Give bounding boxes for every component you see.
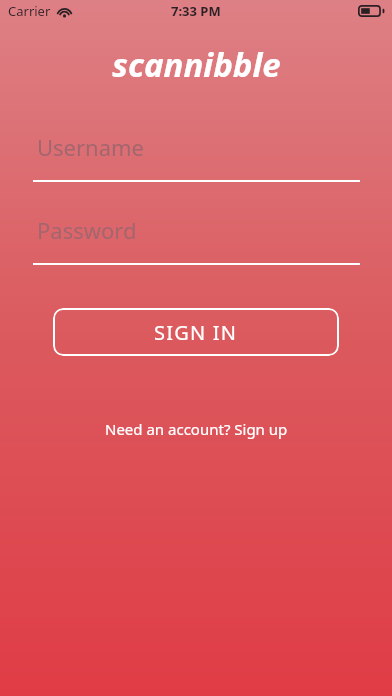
- button[interactable]: Username: [33, 130, 360, 184]
- staticText: Carrier: [8, 2, 51, 20]
- button[interactable]: Password: [33, 213, 360, 267]
- staticText: Password: [37, 215, 137, 245]
- button[interactable]: Need an account? Sign up: [105, 419, 288, 439]
- staticText: scannibble: [112, 42, 281, 87]
- staticText: Username: [37, 132, 145, 162]
- staticText: SIGN IN: [154, 319, 238, 346]
- staticText: Need an account? Sign up: [105, 419, 288, 439]
- button[interactable]: SIGN IN: [53, 308, 339, 356]
- staticText: 7:33 PM: [171, 2, 221, 20]
